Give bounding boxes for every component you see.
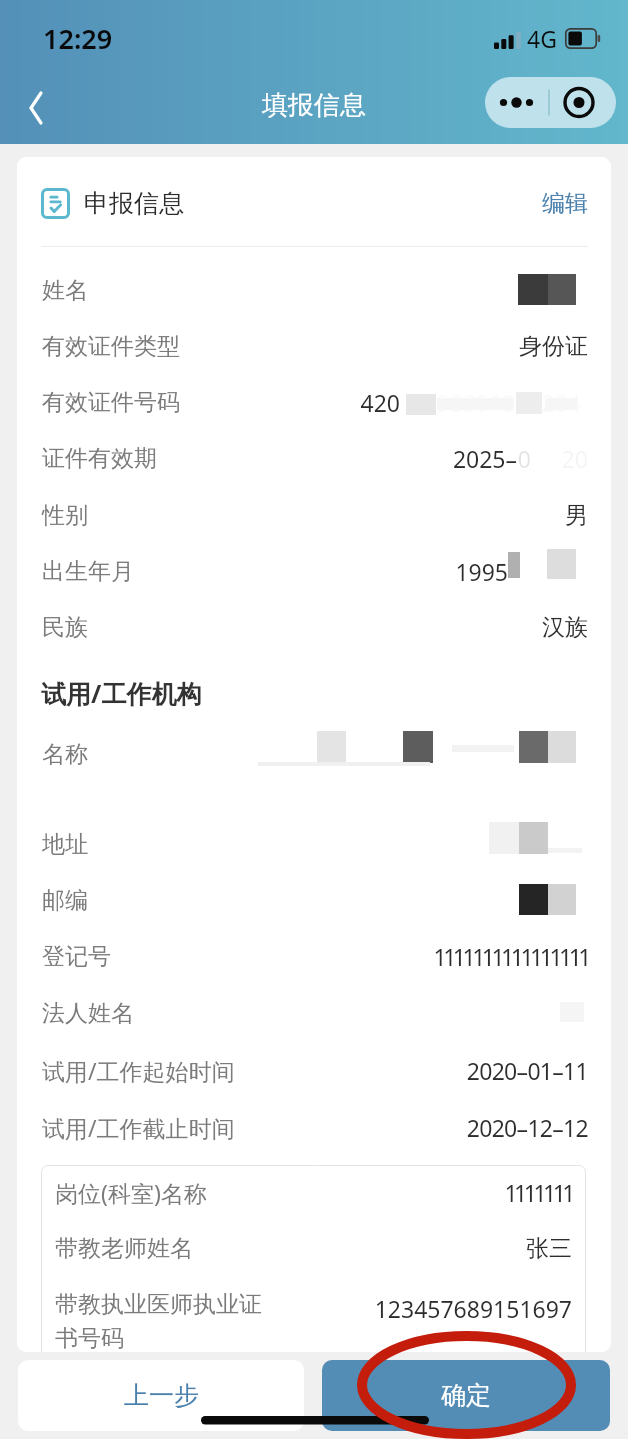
staticText: 确定 [441,1380,491,1411]
button[interactable]: 出生年月 [42,546,588,596]
staticText: 张三 [526,1234,572,1263]
staticText: 名称 [42,740,88,769]
button[interactable]: 带教执业医师执业证 书号码 [55,1288,572,1352]
staticText: 4G [527,23,557,54]
staticText: 带教执业医师执业证 书号码 [55,1290,262,1352]
button[interactable]: More menu [485,77,616,128]
staticText: 编辑 [542,189,588,218]
staticText: 123457689151697 [55,1293,572,1324]
staticText: 证件有效期 [42,444,157,473]
staticText: 邮编 [42,886,88,915]
button[interactable]: 确定 [322,1360,610,1431]
staticText: 申报信息 [84,188,184,219]
button[interactable]: 登记号 [42,931,588,981]
staticText: 填报信息 [262,89,366,122]
staticText: 性别 [42,501,88,530]
button[interactable]: 岗位(科室)名称 [55,1167,572,1217]
button[interactable]: 上一步 [18,1360,304,1431]
staticText: 2020–12–12 [466,1112,588,1143]
staticText: 登记号 [42,942,111,971]
button[interactable]: 姓名 [42,265,588,315]
staticText: 试用/工作截止时间 [42,1112,235,1143]
button[interactable]: 名称 [42,729,588,779]
staticText: 试用/工作起始时间 [42,1055,235,1086]
button[interactable]: 有效证件号码 [42,377,588,427]
button[interactable]: 带教老师姓名 [55,1223,572,1273]
staticText: 男 [565,501,588,530]
staticText: 汉族 [542,613,588,642]
staticText: 带教老师姓名 [55,1234,193,1263]
staticText: 岗位(科室)名称 [55,1177,207,1208]
button[interactable]: 民族 [42,602,588,652]
button[interactable]: 编辑 [517,174,588,232]
staticText: 2025– [42,443,517,474]
staticText: 20 [42,443,588,474]
staticText: 地址 [42,830,88,859]
staticText: 身份证 [519,332,588,361]
staticText: 198801021234 [42,387,581,418]
staticText: 出生年月 [42,557,134,586]
button[interactable]: 有效证件类型 [42,321,588,371]
staticText: 姓名 [42,276,88,305]
staticText: 法人姓名 [42,999,134,1028]
staticText: 1111111 [504,1177,572,1208]
staticText: 1995 [42,556,508,587]
button[interactable]: 证件有效期 [42,433,588,483]
staticText: 0 [42,443,531,474]
button[interactable]: 邮编 [42,875,588,925]
staticText: 2020–01–11 [466,1055,588,1086]
button[interactable]: 地址 [42,819,588,869]
staticText: 1111111111111111 [433,941,588,972]
button[interactable]: 申报信息 [41,174,341,232]
button[interactable]: 法人姓名 [42,988,588,1038]
staticText: 12:29 [43,20,113,57]
staticText: 试用/工作机构 [41,676,202,710]
button[interactable]: 性别 [42,490,588,540]
staticText: 上一步 [124,1380,199,1411]
button[interactable]: 试用/工作截止时间 [42,1102,588,1152]
button[interactable]: 试用/工作起始时间 [42,1045,588,1095]
staticText: 420 [42,387,400,418]
staticText: 有效证件号码 [42,388,180,417]
button[interactable]: Back [10,84,58,132]
staticText: 民族 [42,613,88,642]
staticText: 有效证件类型 [42,332,180,361]
